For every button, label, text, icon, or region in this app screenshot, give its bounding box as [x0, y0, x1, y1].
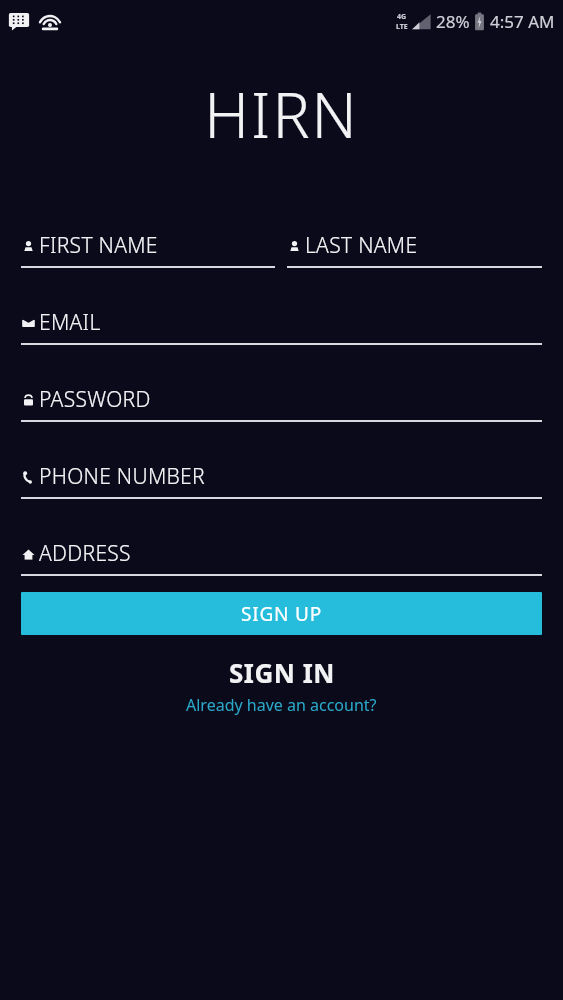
staticText: LAST NAME: [305, 231, 418, 260]
button[interactable]: SIGN UP: [21, 592, 542, 635]
button[interactable]: PHONE NUMBER: [21, 462, 542, 499]
staticText: PASSWORD: [39, 385, 151, 414]
button[interactable]: LAST NAME: [287, 231, 542, 268]
staticText: 4G: [397, 12, 407, 22]
staticText: LTE: [396, 22, 408, 32]
button[interactable]: SIGN IN: [21, 655, 542, 716]
staticText: SIGN IN: [229, 655, 335, 690]
staticText: 28%: [436, 10, 470, 33]
button[interactable]: ADDRESS: [21, 539, 542, 576]
staticText: Already have an account?: [186, 694, 377, 716]
staticText: HIRN: [0, 72, 563, 156]
staticText: PHONE NUMBER: [39, 462, 205, 491]
button[interactable]: FIRST NAME: [21, 231, 275, 268]
staticText: 4:57 AM: [490, 10, 555, 33]
staticText: EMAIL: [39, 308, 101, 337]
staticText: ADDRESS: [39, 539, 131, 568]
staticText: SIGN UP: [241, 601, 323, 627]
button[interactable]: EMAIL: [21, 308, 542, 345]
staticText: FIRST NAME: [39, 231, 158, 260]
button[interactable]: PASSWORD: [21, 385, 542, 422]
